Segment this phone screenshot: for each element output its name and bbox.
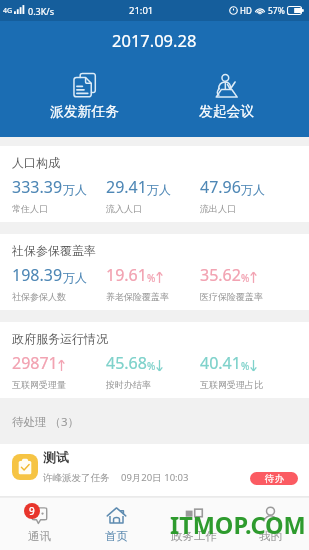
- staticText: 养老保险覆盖率: [106, 291, 169, 302]
- staticText: 通讯: [28, 529, 51, 543]
- staticText: 29871: [12, 352, 58, 374]
- button[interactable]: Home: [78, 497, 155, 550]
- staticText: 社保参保人数: [12, 291, 66, 302]
- button[interactable]: 人口构成: [0, 146, 309, 222]
- staticText: 互联网受理量: [12, 379, 66, 390]
- button[interactable]: 社保参保覆盖率: [0, 234, 309, 310]
- button[interactable]: 待办: [250, 472, 298, 485]
- button[interactable]: Profile: [232, 497, 309, 550]
- staticText: %: [147, 271, 156, 285]
- staticText: 万人: [147, 182, 171, 197]
- staticText: 待处理 （3）: [12, 414, 80, 430]
- staticText: 40.41: [200, 352, 241, 374]
- button[interactable]: 派发新任务: [46, 71, 123, 121]
- other: Home: [106, 505, 127, 526]
- staticText: %: [241, 271, 250, 285]
- staticText: 流出人口: [200, 203, 236, 214]
- staticText: 人口构成: [12, 155, 60, 170]
- staticText: ITMOP.COM: [170, 509, 306, 541]
- staticText: 45.68: [106, 352, 147, 374]
- staticText: HD: [240, 5, 252, 16]
- staticText: 万人: [241, 182, 265, 197]
- staticText: 万人: [63, 182, 87, 197]
- staticText: 我的: [259, 529, 282, 543]
- staticText: %: [241, 359, 250, 373]
- staticText: 政务工作: [171, 529, 217, 543]
- button[interactable]: Messages: [0, 497, 78, 550]
- staticText: %: [147, 359, 156, 373]
- other: Profile: [261, 506, 280, 525]
- staticText: 测试: [43, 449, 69, 465]
- staticText: 流入人口: [106, 203, 142, 214]
- staticText: 47.96: [200, 176, 241, 198]
- staticText: 按时办结率: [106, 379, 151, 390]
- staticText: 待办: [265, 473, 284, 485]
- staticText: 医疗保险覆盖率: [200, 291, 263, 302]
- button[interactable]: 测试: [0, 444, 309, 496]
- staticText: 政府服务运行情况: [12, 331, 108, 346]
- other: Messages: [30, 506, 49, 525]
- staticText: 派发新任务: [50, 103, 119, 120]
- staticText: 0.3K/s: [28, 5, 54, 17]
- staticText: 19.61: [106, 264, 147, 286]
- staticText: 许峰派发了任务: [43, 472, 110, 484]
- button[interactable]: Work: [155, 497, 232, 550]
- staticText: 29.41: [106, 176, 147, 198]
- staticText: 2017.09.28: [112, 29, 197, 51]
- button[interactable]: 政府服务运行情况: [0, 322, 309, 398]
- staticText: 互联网受理占比: [200, 379, 263, 390]
- staticText: 333.39: [12, 176, 63, 198]
- other: Work: [185, 507, 203, 525]
- staticText: 发起会议: [199, 103, 255, 120]
- staticText: 57%: [268, 5, 285, 17]
- staticText: 首页: [105, 529, 128, 543]
- staticText: 198.39: [12, 264, 63, 286]
- staticText: 21:01: [129, 4, 154, 17]
- staticText: 9: [29, 504, 35, 518]
- button[interactable]: 发起会议: [195, 71, 259, 121]
- staticText: 35.62: [200, 264, 241, 286]
- staticText: 社保参保覆盖率: [12, 243, 96, 258]
- staticText: 09月20日 10:03: [121, 471, 189, 484]
- staticText: 万人: [63, 270, 87, 285]
- staticText: 常住人口: [12, 203, 48, 214]
- staticText: 4G: [3, 6, 13, 16]
